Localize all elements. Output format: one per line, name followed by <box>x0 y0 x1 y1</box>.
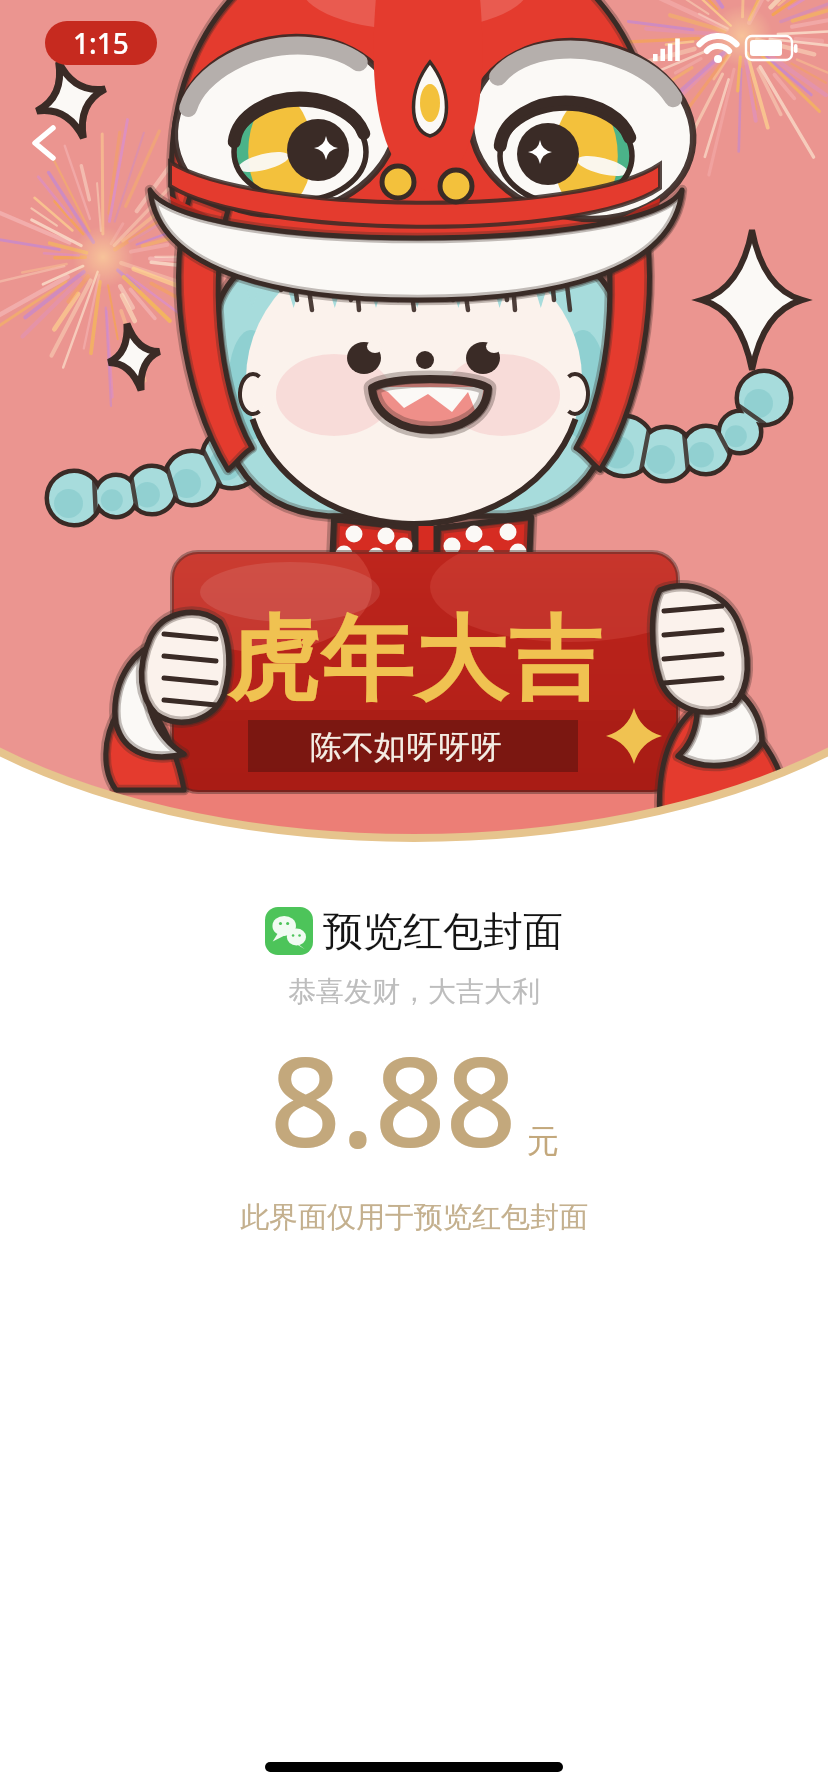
button[interactable]: Back <box>0 99 88 187</box>
button[interactable]: 预览红包封面 <box>257 902 571 960</box>
staticText: 1:15 <box>73 24 129 62</box>
staticText: 虎年大吉 <box>226 602 602 718</box>
staticText: 恭喜发财，大吉大利 <box>288 974 540 1009</box>
staticText: 元 <box>527 1121 559 1161</box>
staticText: 此界面仅用于预览红包封面 <box>240 1199 588 1236</box>
staticText: 陈不如呀呀呀 <box>310 727 502 767</box>
button[interactable]: Red packet cover preview <box>0 0 828 838</box>
staticText: 预览红包封面 <box>323 906 563 956</box>
staticText: 8.88 <box>270 1014 517 1183</box>
